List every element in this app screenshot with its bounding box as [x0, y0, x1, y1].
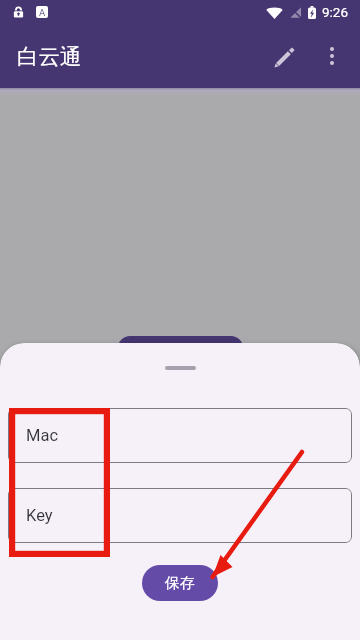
staticText: 白云通: [17, 43, 82, 70]
button[interactable]: Key: [8, 488, 352, 543]
button[interactable]: Edit: [260, 32, 308, 80]
staticText: 保存: [165, 574, 195, 593]
staticText: A: [39, 7, 46, 18]
staticText: Mac: [26, 426, 59, 445]
button[interactable]: More options: [308, 32, 356, 80]
staticText: Key: [26, 506, 53, 525]
staticText: 9:26: [322, 4, 349, 20]
button[interactable]: Mac: [8, 408, 352, 463]
button[interactable]: 保存: [142, 565, 218, 601]
